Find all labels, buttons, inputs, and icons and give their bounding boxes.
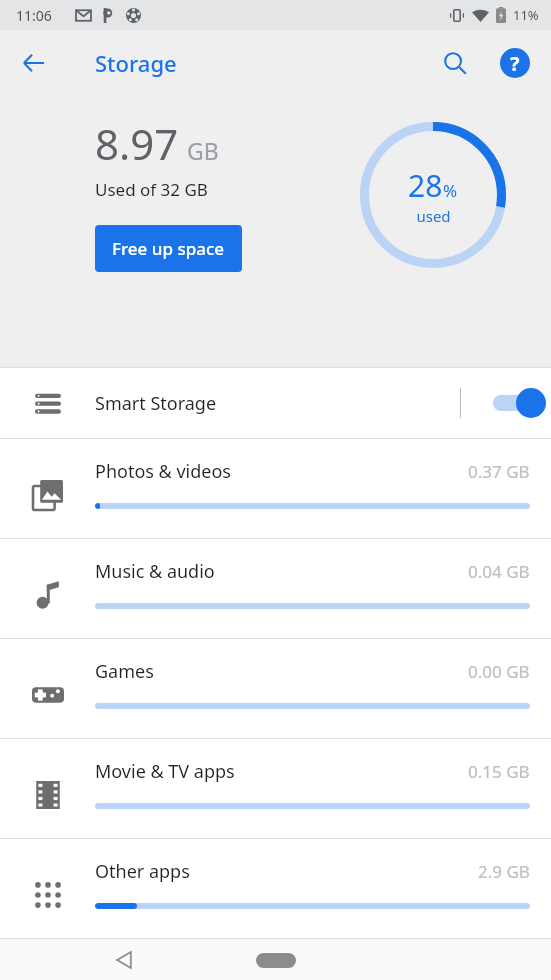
button[interactable]: Home (246, 940, 306, 980)
button[interactable]: Games (0, 639, 551, 738)
button[interactable]: Movie & TV apps (0, 739, 551, 838)
staticText: 11% (513, 6, 539, 24)
staticText: 0.37 GB (468, 460, 530, 483)
staticText: % (443, 179, 458, 202)
button[interactable]: Back (12, 41, 56, 85)
staticText: Storage (95, 48, 177, 78)
button[interactable]: Free up space (95, 225, 242, 272)
button[interactable]: Other apps (0, 839, 551, 938)
staticText: used (416, 206, 451, 226)
staticText: 11:06 (16, 6, 52, 25)
button[interactable]: Smart Storage (0, 368, 551, 438)
staticText: Smart Storage (95, 391, 460, 416)
staticText: 8.97 (95, 115, 179, 172)
staticText: 28 (408, 165, 443, 206)
staticText: Other apps (95, 859, 190, 884)
button[interactable]: Back (100, 939, 148, 980)
button[interactable]: Smart Storage toggle (461, 373, 551, 433)
staticText: Music & audio (95, 559, 215, 584)
button[interactable]: Music & audio (0, 539, 551, 638)
staticText: Movie & TV apps (95, 759, 235, 784)
staticText: 0.04 GB (468, 560, 530, 583)
staticText: 0.15 GB (468, 760, 530, 783)
staticText: ? (510, 50, 520, 77)
staticText: Used of 32 GB (95, 178, 208, 201)
staticText: Free up space (112, 237, 225, 260)
button[interactable]: Help (493, 41, 537, 85)
button[interactable]: Photos & videos (0, 439, 551, 538)
staticText: Photos & videos (95, 459, 231, 484)
staticText: GB (187, 135, 219, 166)
staticText: 2.9 GB (478, 860, 530, 883)
button[interactable]: Search (433, 41, 477, 85)
staticText: Games (95, 659, 154, 684)
staticText: 0.00 GB (468, 660, 530, 683)
